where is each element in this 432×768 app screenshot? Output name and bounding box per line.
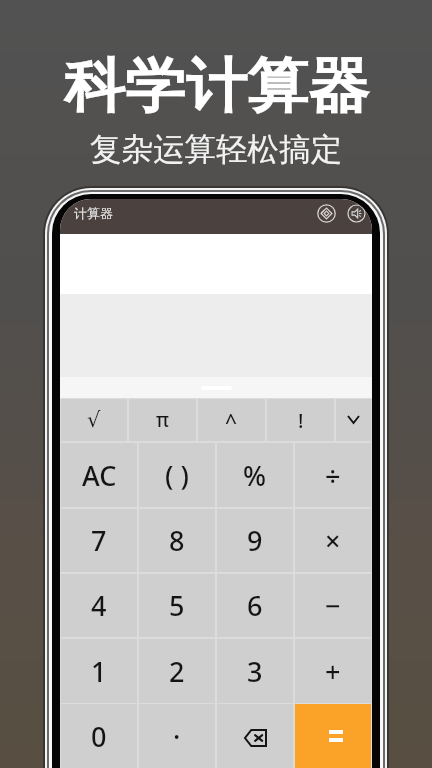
button[interactable]: √ (61, 399, 127, 441)
button[interactable]: 1 (61, 639, 137, 703)
button[interactable]: Sound (345, 202, 367, 224)
button[interactable]: ÷ (295, 443, 371, 507)
staticText: 7 (91, 522, 107, 559)
button[interactable]: Equals (295, 704, 371, 768)
button[interactable]: + (295, 639, 371, 703)
button[interactable]: 4 (61, 574, 137, 637)
button[interactable]: Theme (315, 202, 337, 224)
staticText: 5 (169, 587, 185, 624)
button[interactable]: 2 (139, 639, 215, 703)
button[interactable]: 5 (139, 574, 215, 637)
button[interactable]: 7 (61, 509, 137, 572)
staticText: 复杂运算轻松搞定 (90, 130, 342, 170)
button[interactable]: Backspace (217, 704, 293, 768)
button[interactable]: AC (61, 443, 137, 507)
button[interactable]: · (139, 704, 215, 768)
staticText: ( ) (165, 457, 189, 494)
staticText: 3 (247, 653, 263, 690)
staticText: 4 (91, 587, 107, 624)
staticText: − (325, 587, 341, 624)
staticText: AC (82, 457, 117, 494)
button[interactable]: 8 (139, 509, 215, 572)
button[interactable]: ^ (198, 399, 265, 441)
button[interactable]: % (217, 443, 293, 507)
button[interactable]: 0 (61, 704, 137, 768)
button[interactable]: − (295, 574, 371, 637)
staticText: 计算器 (74, 205, 113, 221)
staticText: 8 (169, 522, 185, 559)
staticText: · (173, 718, 181, 755)
button[interactable]: ( ) (139, 443, 215, 507)
button[interactable]: 3 (217, 639, 293, 703)
staticText: 科学计算器 (64, 49, 369, 123)
button[interactable]: × (295, 509, 371, 572)
button[interactable]: ! (267, 399, 334, 441)
staticText: ! (298, 407, 304, 434)
button[interactable]: 9 (217, 509, 293, 572)
staticText: √ (87, 408, 101, 432)
button[interactable]: π (129, 399, 196, 441)
button[interactable]: More (336, 399, 371, 441)
staticText: ^ (225, 408, 238, 437)
staticText: % (243, 457, 267, 494)
staticText: × (325, 522, 341, 559)
staticText: + (325, 653, 341, 690)
staticText: 1 (91, 653, 107, 690)
staticText: 2 (169, 653, 185, 690)
staticText: 6 (247, 587, 263, 624)
button[interactable]: 6 (217, 574, 293, 637)
staticText: 9 (247, 522, 263, 559)
staticText: π (156, 407, 169, 433)
staticText: 0 (91, 718, 107, 755)
staticText: ÷ (325, 457, 341, 494)
